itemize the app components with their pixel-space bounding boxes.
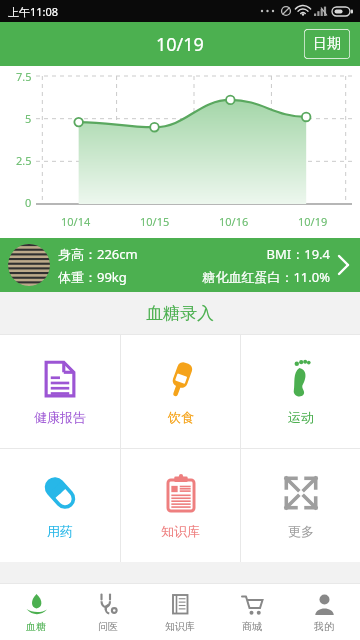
staticText: 日期 [313, 35, 341, 53]
staticText: 10/19 [156, 32, 204, 57]
button[interactable]: 健康报告 [0, 335, 120, 448]
staticText: 0 [25, 195, 32, 210]
staticText: 糖化血红蛋白：11.0% [171, 268, 330, 286]
other: Details [336, 251, 352, 279]
staticText: 10/14 [61, 214, 91, 229]
button[interactable]: 身高：226cm [0, 238, 360, 292]
staticText: 用药 [47, 523, 73, 539]
button[interactable]: 我的 [288, 584, 360, 640]
staticText: 体重：99kg [58, 268, 171, 286]
staticText: 10/19 [298, 214, 328, 229]
staticText: 10/15 [140, 214, 170, 229]
button[interactable]: 血糖 [0, 584, 72, 640]
staticText: 身高：226cm [58, 245, 194, 263]
button[interactable]: 饮食 [121, 335, 240, 448]
staticText: 运动 [288, 409, 314, 425]
button[interactable]: 更多 [241, 449, 360, 562]
button[interactable]: 日期 [304, 29, 350, 59]
staticText: 血糖 [26, 620, 46, 633]
button[interactable]: 商城 [216, 584, 288, 640]
staticText: 2.5 [16, 153, 32, 168]
staticText: 5 [25, 111, 32, 126]
staticText: BMI：19.4 [194, 245, 330, 263]
button[interactable]: 问医 [72, 584, 144, 640]
button[interactable]: 运动 [241, 335, 360, 448]
staticText: 我的 [314, 620, 334, 633]
staticText: 知识库 [165, 620, 195, 633]
button[interactable]: 知识库 [144, 584, 216, 640]
staticText: 10/16 [219, 214, 249, 229]
staticText: 问医 [98, 620, 118, 633]
staticText: 7.5 [16, 69, 32, 84]
staticText: 上午11:08 [8, 4, 59, 19]
staticText: 健康报告 [34, 409, 86, 425]
staticText: 血糖录入 [146, 303, 214, 324]
staticText: 饮食 [168, 409, 194, 425]
button[interactable]: 用药 [0, 449, 120, 562]
staticText: 知识库 [161, 523, 200, 539]
staticText: 更多 [288, 523, 314, 539]
staticText: 商城 [242, 620, 262, 633]
button[interactable]: 知识库 [121, 449, 240, 562]
